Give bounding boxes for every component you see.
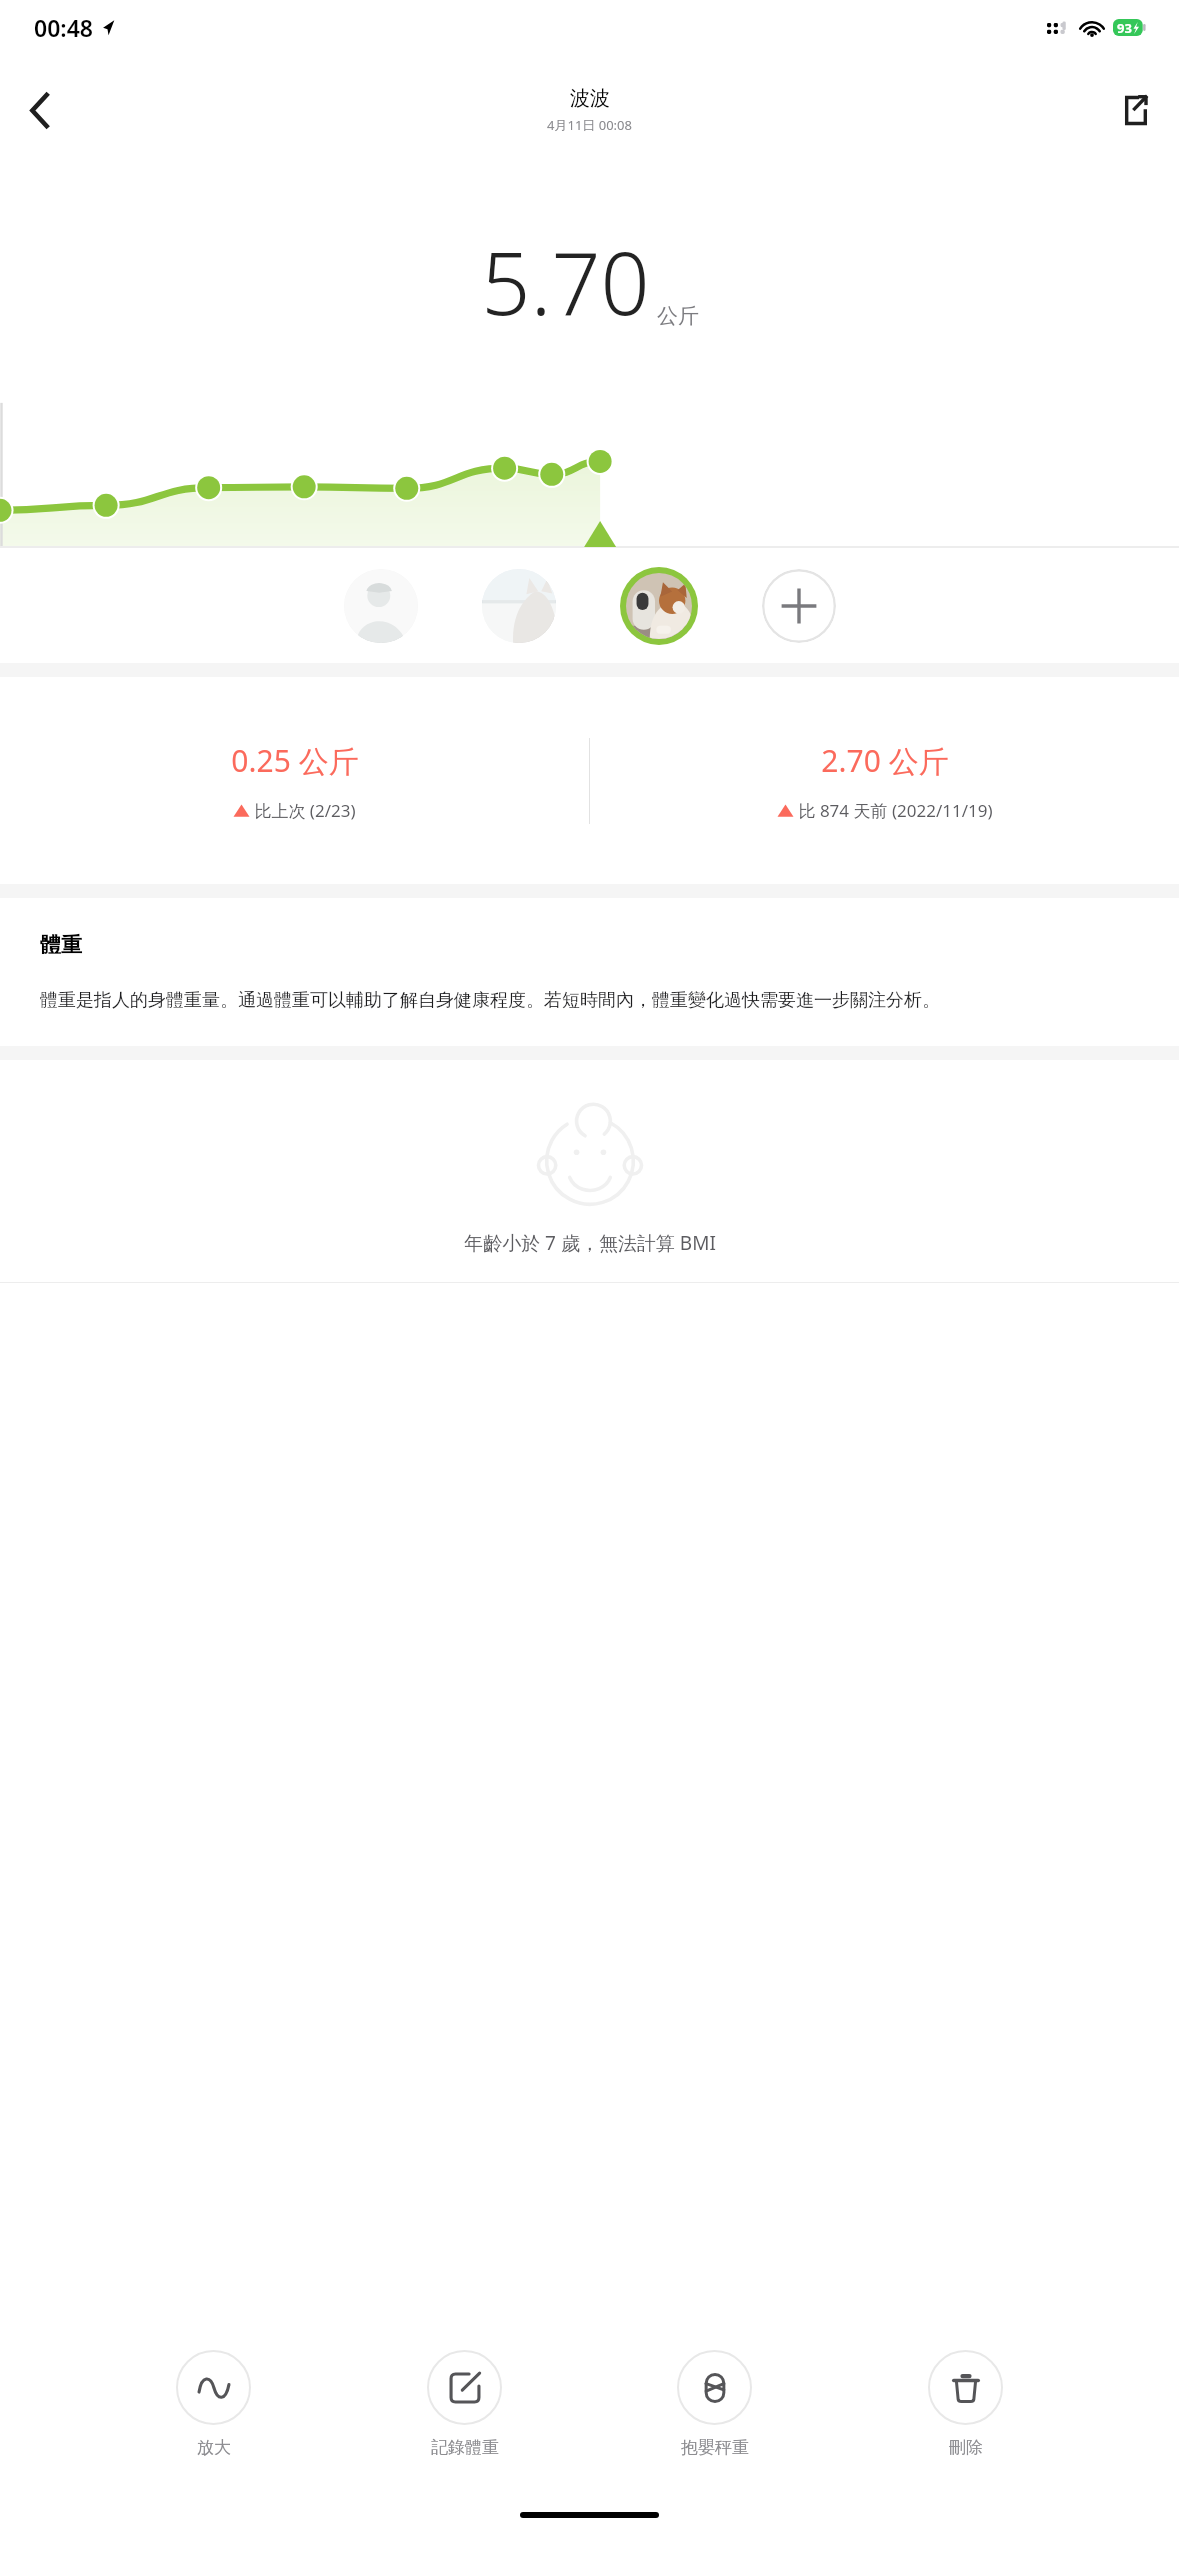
button[interactable]: 刪除 xyxy=(928,2350,1003,2458)
button[interactable]: Share xyxy=(1107,83,1161,137)
button[interactable]: 0.25 公斤 xyxy=(0,740,589,822)
staticText: 5.70 xyxy=(481,223,650,340)
button[interactable]: 2.70 公斤 xyxy=(590,740,1179,822)
button[interactable]: Add profile xyxy=(762,569,836,643)
button[interactable]: 放大 xyxy=(176,2350,251,2458)
staticText: 抱嬰秤重 xyxy=(681,2437,749,2458)
button[interactable]: Back xyxy=(10,81,68,139)
staticText: 00:48 xyxy=(34,12,93,43)
staticText: 刪除 xyxy=(949,2437,983,2458)
button[interactable]: Profile 2 xyxy=(482,569,556,643)
staticText: 體重是指人的身體重量。通過體重可以輔助了解自身健康程度。若短時間內，體重變化過快… xyxy=(40,989,940,1012)
staticText: 記錄體重 xyxy=(431,2437,499,2458)
staticText: 比 874 天前 (2022/11/19) xyxy=(798,799,993,822)
staticText: 0.25 公斤 xyxy=(231,740,359,781)
button[interactable]: Profile 1 xyxy=(344,569,418,643)
staticText: 93 xyxy=(1117,19,1132,36)
staticText: 波波 xyxy=(570,86,610,111)
staticText: 公斤 xyxy=(657,303,699,329)
button[interactable]: 抱嬰秤重 xyxy=(677,2350,752,2458)
button[interactable]: Selected profile 波波 xyxy=(620,567,698,645)
staticText: 4月11日 00:08 xyxy=(547,116,632,134)
staticText: 比上次 (2/23) xyxy=(254,799,356,822)
staticText: 年齡小於 7 歲，無法計算 BMI xyxy=(464,1230,716,1256)
staticText: 2.70 公斤 xyxy=(821,740,949,781)
staticText: 體重 xyxy=(40,932,82,958)
button[interactable]: 記錄體重 xyxy=(427,2350,502,2458)
staticText: 放大 xyxy=(197,2437,231,2458)
